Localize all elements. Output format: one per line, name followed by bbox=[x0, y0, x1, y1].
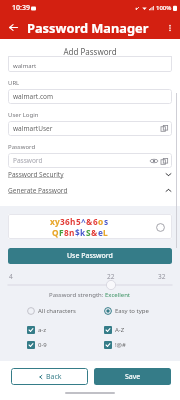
staticText: 6 bbox=[93, 216, 98, 227]
staticText: walmart bbox=[13, 62, 37, 70]
staticText: ^ bbox=[81, 216, 86, 227]
button[interactable]: Back bbox=[11, 368, 88, 385]
staticText: S bbox=[86, 227, 91, 238]
staticText: Password bbox=[8, 143, 36, 151]
button[interactable]: a-z bbox=[27, 326, 104, 334]
staticText: & bbox=[86, 216, 93, 227]
staticText: Add Password bbox=[0, 46, 180, 57]
button[interactable]: More options bbox=[163, 21, 177, 35]
staticText: n bbox=[69, 227, 75, 238]
staticText: h bbox=[70, 216, 76, 227]
button[interactable]: 0-9 bbox=[27, 341, 104, 349]
staticText: User Login bbox=[8, 111, 39, 119]
staticText: Generate Password bbox=[8, 186, 68, 195]
staticText: All characters bbox=[38, 307, 76, 315]
staticText: 8 bbox=[64, 227, 69, 238]
staticText: 6 bbox=[65, 216, 70, 227]
staticText: e bbox=[98, 227, 103, 238]
staticText: Password strength: bbox=[49, 291, 105, 299]
button[interactable]: Back bbox=[5, 19, 22, 36]
staticText: k bbox=[80, 227, 86, 238]
staticText: Easy to type bbox=[115, 307, 149, 315]
staticText: URL bbox=[8, 79, 20, 87]
staticText: L bbox=[103, 227, 108, 238]
staticText: s bbox=[104, 216, 109, 227]
staticText: Q bbox=[52, 227, 59, 238]
button[interactable]: A-Z bbox=[104, 326, 166, 334]
button[interactable]: Password Security bbox=[8, 170, 172, 179]
button[interactable] bbox=[0, 279, 180, 291]
staticText: & bbox=[91, 227, 98, 238]
button[interactable]: !@# bbox=[104, 341, 166, 349]
button[interactable]: Save bbox=[94, 368, 171, 385]
button[interactable]: Password bbox=[8, 153, 172, 168]
button[interactable]: Regenerate password bbox=[154, 221, 166, 233]
staticText: 22 bbox=[107, 272, 115, 281]
button[interactable]: walmart.com bbox=[8, 89, 172, 104]
staticText: Password Security bbox=[8, 170, 64, 179]
button[interactable]: All characters bbox=[27, 307, 104, 315]
button[interactable]: Generate Password bbox=[8, 186, 172, 195]
staticText: F bbox=[59, 227, 64, 238]
staticText: Password Manager bbox=[27, 19, 149, 36]
button[interactable]: walmartUser bbox=[8, 121, 172, 136]
staticText: 0-9 bbox=[38, 341, 47, 349]
staticText: 3 bbox=[60, 216, 65, 227]
staticText: walmart.com bbox=[13, 92, 54, 101]
staticText: !@# bbox=[115, 341, 126, 349]
staticText: 100% bbox=[156, 4, 172, 12]
staticText: $ bbox=[75, 227, 80, 238]
button[interactable]: Easy to type bbox=[104, 307, 166, 315]
staticText: Password bbox=[13, 156, 43, 165]
staticText: x bbox=[50, 216, 55, 227]
staticText: Save bbox=[125, 372, 141, 382]
staticText: 4 bbox=[9, 272, 13, 281]
staticText: 5 bbox=[76, 216, 81, 227]
staticText: y bbox=[55, 216, 60, 227]
staticText: Excellent bbox=[105, 291, 131, 299]
staticText: Use Password bbox=[67, 251, 113, 261]
staticText: 32 bbox=[158, 272, 166, 281]
staticText: Back bbox=[46, 372, 62, 382]
staticText: A-Z bbox=[115, 326, 125, 334]
staticText: a-z bbox=[38, 326, 47, 334]
button[interactable]: Use Password bbox=[8, 248, 172, 264]
staticText: 10:39 bbox=[12, 3, 30, 13]
staticText: o bbox=[98, 216, 104, 227]
staticText: walmartUser bbox=[13, 124, 53, 133]
